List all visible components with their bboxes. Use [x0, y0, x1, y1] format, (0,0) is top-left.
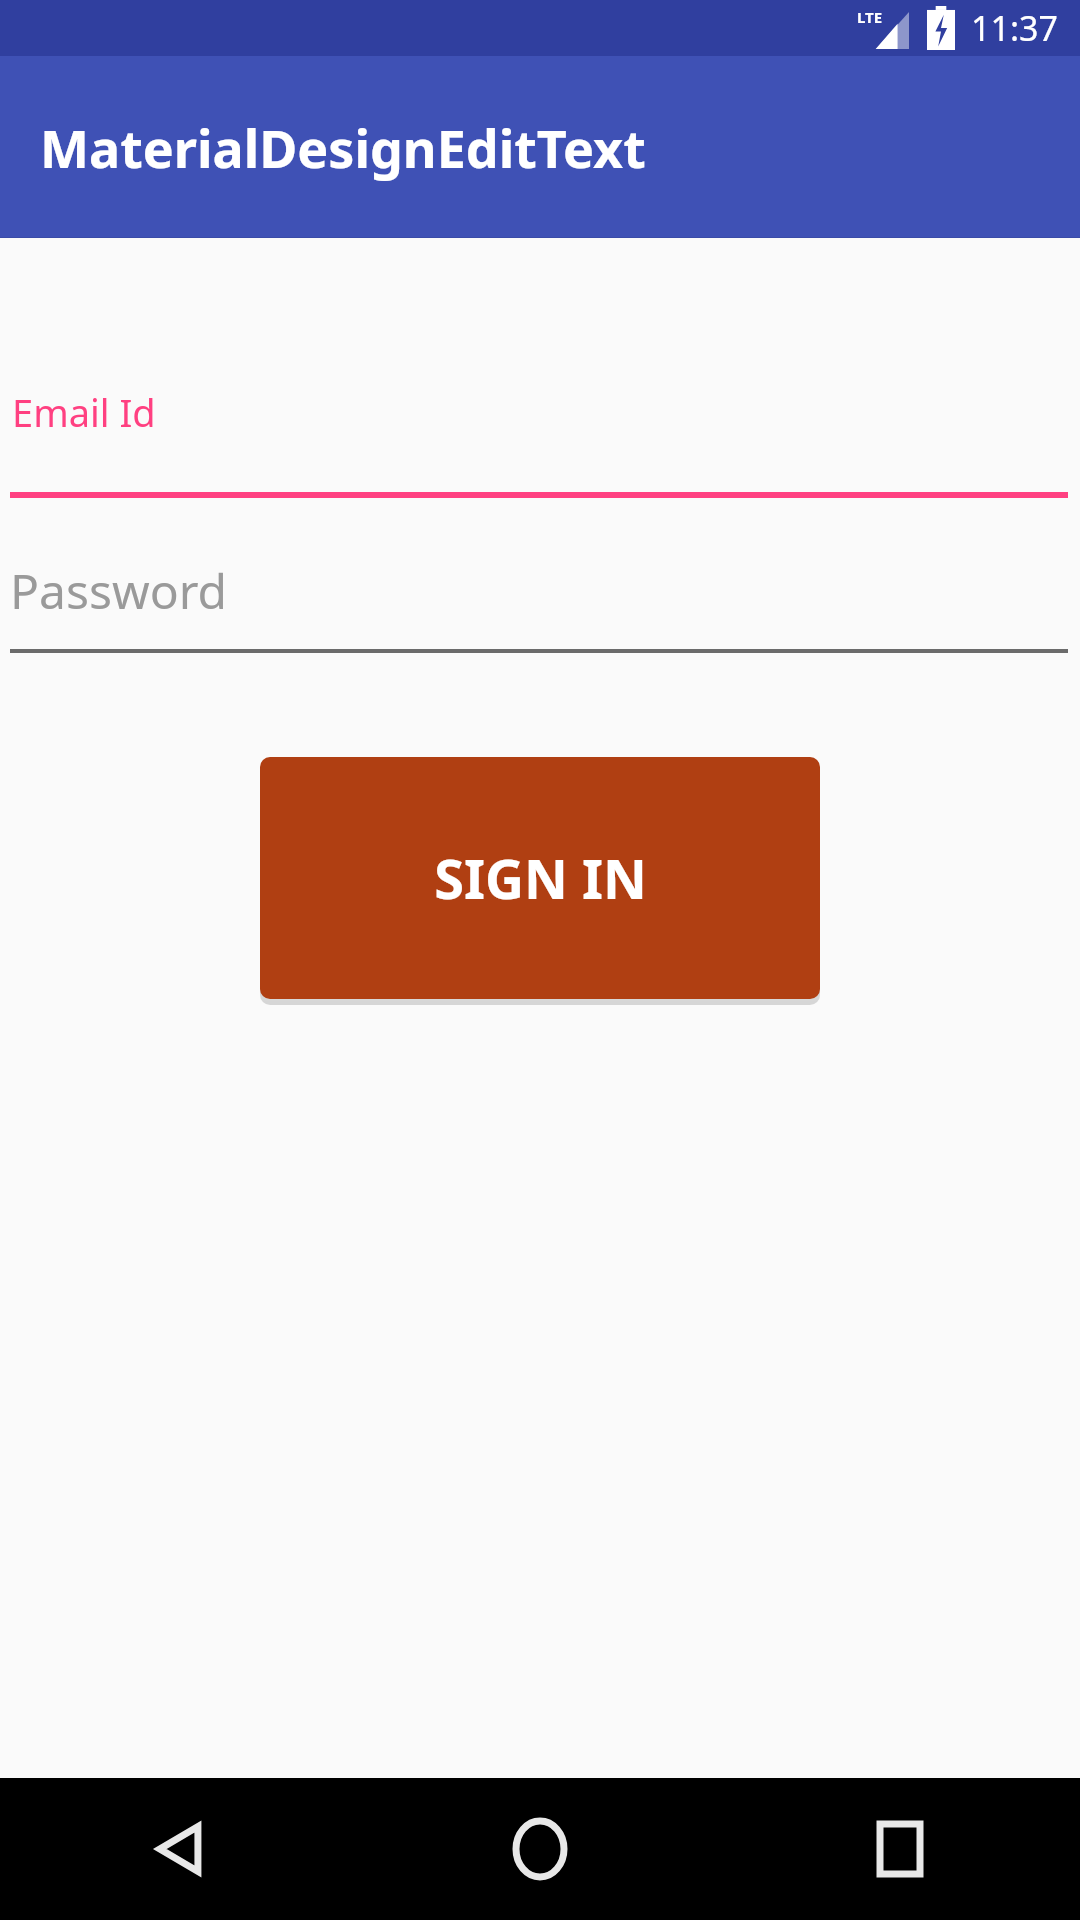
staticText: LTE	[857, 7, 883, 27]
staticText: SIGN IN	[434, 841, 647, 915]
button[interactable]: Back	[0, 1778, 360, 1920]
button[interactable]: Home	[360, 1778, 720, 1920]
button[interactable]: Email Id	[0, 386, 1080, 438]
button[interactable]: Password	[0, 558, 1080, 623]
staticText: 11:37	[971, 5, 1058, 51]
button[interactable]: SIGN IN	[260, 757, 820, 999]
button[interactable]: Recent apps	[720, 1778, 1080, 1920]
staticText: MaterialDesignEditText	[40, 112, 646, 183]
